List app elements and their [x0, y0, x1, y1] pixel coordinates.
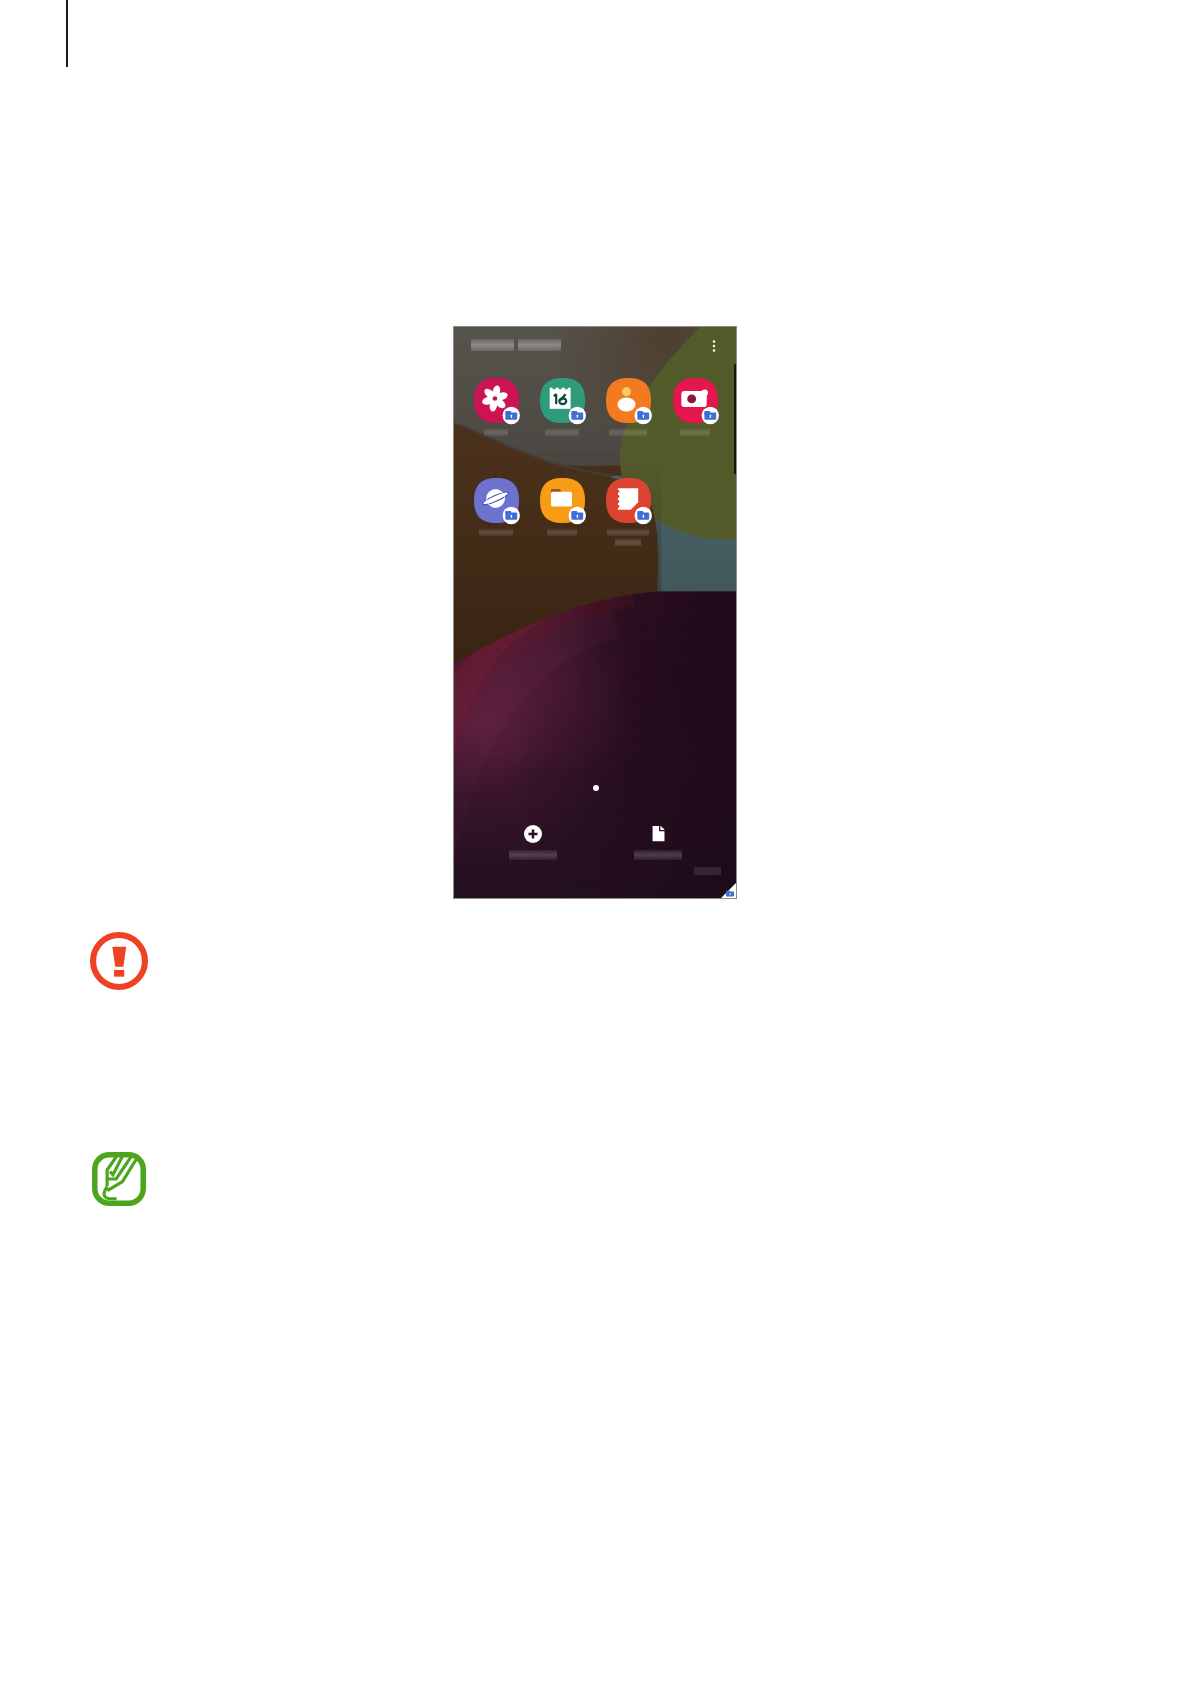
button[interactable]: Calendar: [529, 378, 595, 436]
button[interactable]: Camera: [662, 378, 728, 436]
button[interactable]: Add apps: [501, 825, 565, 860]
button[interactable]: Contacts: [595, 378, 661, 436]
other: Note: [90, 1150, 148, 1208]
button[interactable]: My Files: [529, 478, 595, 536]
button[interactable]: More options: [706, 338, 722, 354]
button[interactable]: Gallery: [463, 378, 529, 436]
button[interactable]: Internet: [463, 478, 529, 536]
button[interactable]: Samsung Notes: [595, 478, 661, 546]
button[interactable]: Add files: [626, 825, 690, 860]
other: Warning: [90, 932, 148, 990]
